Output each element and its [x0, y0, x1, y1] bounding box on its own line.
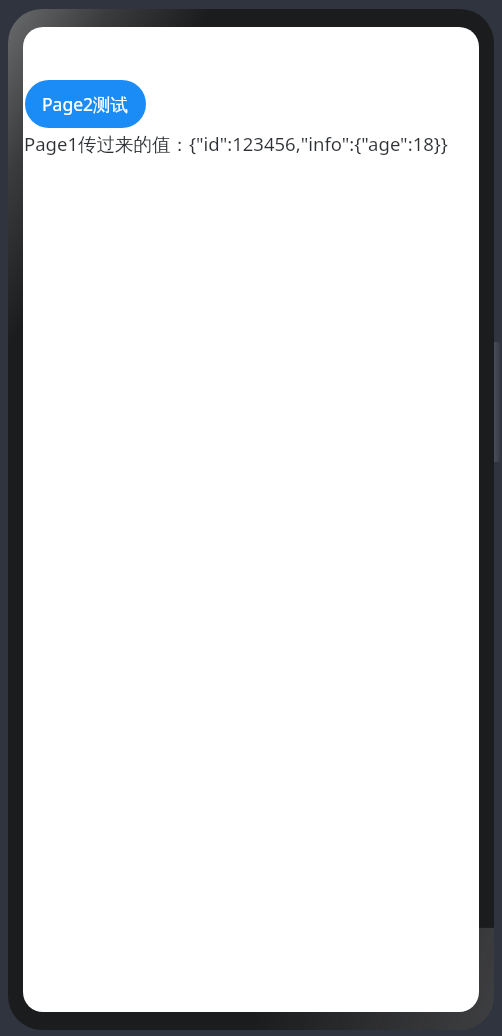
button[interactable]: Page2测试: [25, 80, 146, 128]
staticText: Page1传过来的值：{"id":123456,"info":{"age":18…: [24, 131, 448, 156]
staticText: Page2测试: [42, 92, 129, 116]
button[interactable]: Power button: [487, 342, 500, 462]
